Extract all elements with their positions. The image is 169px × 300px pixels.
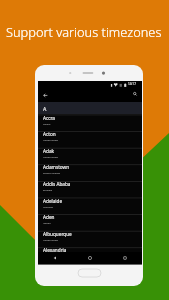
button[interactable]: Navigate up: [40, 90, 50, 100]
staticText: United States: [43, 238, 59, 241]
button[interactable]: Adelaide: [38, 198, 142, 215]
button[interactable]: Adak: [38, 148, 142, 165]
button[interactable]: Acton: [38, 131, 142, 148]
staticText: Adamstown: [43, 164, 70, 170]
staticText: Ethiopia: [43, 188, 53, 191]
button[interactable]: Accra: [38, 115, 142, 132]
staticText: Alexandria: [43, 247, 67, 253]
staticText: 14:17: [128, 82, 136, 86]
staticText: Addis Ababa: [43, 181, 71, 187]
other: Recent apps: [122, 255, 128, 261]
button[interactable]: Alexandria: [38, 247, 142, 264]
button[interactable]: Aden: [38, 214, 142, 231]
staticText: Accra: [43, 115, 55, 121]
staticText: Yemen: [43, 221, 51, 224]
other: Home: [87, 255, 93, 261]
staticText: A: [43, 105, 47, 112]
button[interactable]: Adamstown: [38, 164, 142, 181]
button[interactable]: Back: [38, 252, 72, 264]
staticText: Acton: [43, 131, 56, 137]
staticText: United States: [43, 155, 59, 158]
staticText: United States: [43, 138, 59, 141]
staticText: Adak: [43, 148, 55, 154]
staticText: Adelaide: [43, 198, 63, 204]
staticText: Australia: [43, 205, 53, 208]
staticText: Ghana: [43, 122, 51, 125]
staticText: Pitcairn Islands: [43, 171, 61, 174]
staticText: Albuquerque: [43, 231, 72, 237]
staticText: Support various timezones: [6, 23, 162, 40]
button[interactable]: Addis Ababa: [38, 181, 142, 198]
button[interactable]: Home: [72, 252, 107, 264]
button[interactable]: Search: [130, 89, 140, 99]
button[interactable]: Albuquerque: [38, 231, 142, 248]
other: Back: [52, 255, 58, 261]
staticText: Aden: [43, 214, 55, 220]
button[interactable]: Recent apps: [107, 252, 142, 264]
